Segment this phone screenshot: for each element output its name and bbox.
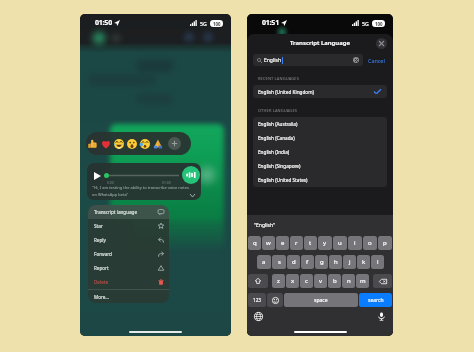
button[interactable]: r: [290, 236, 303, 250]
button[interactable]: z: [272, 274, 285, 288]
button[interactable]: Reply: [88, 233, 169, 247]
staticText: n: [347, 277, 351, 285]
button[interactable]: More reactions: [168, 137, 181, 150]
button[interactable]: More...: [88, 290, 169, 303]
staticText: y: [323, 239, 327, 247]
button[interactable]: q: [248, 236, 261, 250]
button[interactable]: l: [371, 255, 384, 269]
button[interactable]: n: [342, 274, 355, 288]
staticText: RECENT LANGUAGES: [258, 76, 299, 81]
button[interactable]: Star: [88, 219, 169, 233]
button[interactable]: Clear text: [353, 57, 359, 63]
staticText: m: [360, 277, 366, 285]
button[interactable]: v: [314, 274, 327, 288]
button[interactable]: o: [363, 236, 377, 250]
staticText: More...: [94, 294, 110, 300]
staticText: a: [262, 258, 266, 266]
staticText: Delete: [94, 279, 108, 285]
button[interactable]: 0:00: [87, 163, 201, 200]
staticText: OTHER LANGUAGES: [258, 108, 298, 113]
button[interactable]: Emoji keyboard: [267, 293, 283, 307]
button[interactable]: u: [333, 236, 347, 250]
staticText: Forward: [94, 251, 112, 257]
staticText: search: [368, 297, 384, 304]
button[interactable]: Transcript language: [88, 205, 169, 219]
staticText: English (India): [258, 149, 290, 155]
button[interactable]: Change keyboard: [254, 312, 263, 321]
button[interactable]: k: [357, 255, 370, 269]
staticText: English (United States): [258, 177, 308, 183]
staticText: k: [362, 258, 366, 266]
button[interactable]: p: [378, 236, 392, 250]
button[interactable]: English (United Kingdom): [253, 85, 387, 98]
staticText: 123: [253, 297, 261, 303]
button[interactable]: Pray: [152, 138, 163, 149]
button[interactable]: Forward: [88, 247, 169, 261]
staticText: o: [368, 239, 372, 247]
staticText: d: [292, 258, 296, 266]
staticText: q: [253, 239, 257, 247]
button[interactable]: Report: [88, 261, 169, 275]
button[interactable]: Surprised: [126, 138, 137, 149]
staticText: space: [314, 297, 328, 304]
button[interactable]: i: [348, 236, 362, 250]
button[interactable]: d: [287, 255, 300, 269]
button[interactable]: Shift: [248, 274, 268, 288]
button[interactable]: t: [304, 236, 317, 250]
staticText: Transcript language: [94, 209, 137, 215]
button[interactable]: English (United States): [253, 173, 387, 187]
staticText: e: [281, 239, 285, 247]
staticText: h: [334, 258, 338, 266]
button[interactable]: Heart: [100, 138, 111, 149]
staticText: English (Singapore): [258, 163, 301, 169]
button[interactable]: j: [343, 255, 356, 269]
button[interactable]: f: [301, 255, 314, 269]
button[interactable]: w: [262, 236, 275, 250]
staticText: z: [277, 277, 280, 285]
button[interactable]: x: [286, 274, 299, 288]
button[interactable]: g: [315, 255, 328, 269]
staticText: Reply: [94, 237, 106, 243]
staticText: 01:50: [95, 18, 112, 28]
button[interactable]: English (Singapore): [253, 159, 387, 173]
button[interactable]: y: [318, 236, 332, 250]
staticText: s: [278, 258, 281, 266]
staticText: Cancel: [368, 57, 385, 64]
button[interactable]: s: [272, 255, 286, 269]
button[interactable]: Laugh: [113, 138, 124, 149]
staticText: Report: [94, 265, 109, 271]
button[interactable]: Dictate: [377, 312, 386, 321]
button[interactable]: space: [284, 293, 358, 307]
button[interactable]: Cancel: [367, 55, 386, 66]
button[interactable]: m: [356, 274, 369, 288]
staticText: English (United Kingdom): [258, 89, 314, 95]
staticText: Transcript Language: [290, 39, 350, 47]
button[interactable]: h: [329, 255, 342, 269]
button[interactable]: b: [328, 274, 341, 288]
staticText: Star: [94, 223, 103, 229]
staticText: f: [306, 258, 309, 266]
staticText: p: [383, 239, 387, 247]
staticText: 5G: [200, 20, 207, 27]
button[interactable]: Close: [376, 38, 387, 49]
staticText: v: [319, 277, 323, 285]
button[interactable]: Delete: [88, 275, 169, 289]
staticText: x: [291, 277, 295, 285]
button[interactable]: Crying: [139, 138, 150, 149]
staticText: 01:51: [262, 18, 279, 28]
staticText: 100: [213, 21, 221, 27]
button[interactable]: search: [359, 293, 392, 307]
staticText: "English": [254, 222, 276, 229]
button[interactable]: Thumbs up: [87, 138, 98, 149]
button[interactable]: 123: [248, 293, 266, 307]
staticText: 01:00: [162, 180, 171, 185]
button[interactable]: English (Australia): [253, 117, 387, 131]
button[interactable]: English (Canada): [253, 131, 387, 145]
button[interactable]: English: [253, 54, 363, 66]
button[interactable]: English (India): [253, 145, 387, 159]
button[interactable]: c: [300, 274, 313, 288]
button[interactable]: Backspace: [373, 274, 392, 288]
staticText: u: [338, 239, 342, 247]
button[interactable]: e: [276, 236, 289, 250]
button[interactable]: a: [257, 255, 271, 269]
